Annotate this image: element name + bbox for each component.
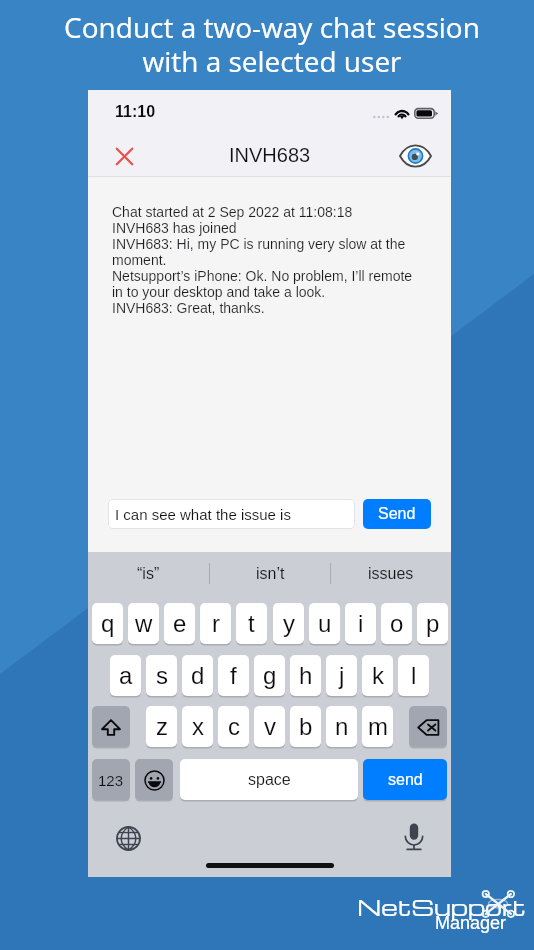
- button[interactable]: Emoji: [135, 759, 173, 801]
- staticText: Netsupport’s iPhone: Ok. No problem, I’l…: [112, 268, 418, 300]
- button[interactable]: r: [200, 603, 231, 645]
- button[interactable]: Send: [363, 499, 431, 529]
- staticText: INVH683: Great, thanks.: [112, 300, 265, 316]
- staticText: t: [248, 610, 255, 637]
- staticText: h: [299, 662, 313, 689]
- staticText: y: [283, 610, 295, 637]
- button[interactable]: l: [398, 655, 429, 697]
- button[interactable]: i: [345, 603, 376, 645]
- button[interactable]: 123: [92, 759, 130, 801]
- button[interactable]: Dictate: [396, 818, 432, 854]
- staticText: INVH683 has joined: [112, 220, 237, 236]
- staticText: NetSupport: [357, 891, 526, 922]
- button[interactable]: s: [146, 655, 177, 697]
- staticText: isn’t: [256, 565, 285, 583]
- staticText: Conduct a two-way chat session with a se…: [64, 8, 480, 80]
- button[interactable]: q: [92, 603, 123, 645]
- staticText: c: [228, 713, 240, 740]
- button[interactable]: e: [164, 603, 195, 645]
- button[interactable]: issues: [331, 552, 451, 595]
- staticText: 123: [98, 772, 124, 789]
- button[interactable]: Shift: [92, 706, 130, 748]
- button[interactable]: c: [218, 706, 249, 748]
- button[interactable]: u: [309, 603, 340, 645]
- button[interactable]: send: [363, 759, 447, 801]
- staticText: b: [299, 713, 313, 740]
- button[interactable]: isn’t: [210, 552, 330, 595]
- staticText: x: [192, 713, 204, 740]
- button[interactable]: space: [180, 759, 358, 801]
- button[interactable]: p: [417, 603, 448, 645]
- staticText: g: [263, 662, 277, 689]
- button[interactable]: j: [326, 655, 357, 697]
- staticText: INVH683: Hi, my PC is running very slow …: [112, 236, 418, 268]
- staticText: z: [156, 713, 168, 740]
- staticText: space: [248, 771, 291, 789]
- staticText: send: [388, 771, 423, 789]
- staticText: Chat started at 2 Sep 2022 at 11:08:18: [112, 204, 353, 220]
- button[interactable]: Switch keyboard: [110, 820, 146, 856]
- staticText: 11:10: [115, 103, 156, 121]
- button[interactable]: Backspace: [409, 706, 447, 748]
- button[interactable]: “is”: [88, 552, 209, 595]
- button[interactable]: a: [110, 655, 141, 697]
- staticText: q: [101, 610, 115, 637]
- staticText: w: [135, 610, 153, 637]
- button[interactable]: Close chat: [105, 137, 143, 175]
- staticText: r: [212, 610, 220, 637]
- button[interactable]: w: [128, 603, 159, 645]
- staticText: a: [119, 662, 133, 689]
- staticText: “is”: [137, 565, 160, 583]
- staticText: e: [173, 610, 187, 637]
- staticText: u: [318, 610, 332, 637]
- staticText: s: [156, 662, 168, 689]
- button[interactable]: z: [146, 706, 177, 748]
- button[interactable]: g: [254, 655, 285, 697]
- button[interactable]: f: [218, 655, 249, 697]
- staticText: Manager: [435, 913, 507, 933]
- staticText: f: [230, 662, 237, 689]
- staticText: l: [411, 662, 417, 689]
- staticText: issues: [368, 565, 414, 583]
- button[interactable]: d: [182, 655, 213, 697]
- button[interactable]: View screen: [390, 136, 440, 176]
- staticText: INVH683: [229, 144, 311, 166]
- button[interactable]: m: [362, 706, 393, 748]
- staticText: n: [335, 713, 349, 740]
- button[interactable]: b: [290, 706, 321, 748]
- staticText: m: [368, 713, 388, 740]
- staticText: v: [264, 713, 276, 740]
- staticText: i: [358, 610, 364, 637]
- button[interactable]: o: [381, 603, 412, 645]
- button[interactable]: v: [254, 706, 285, 748]
- button[interactable]: h: [290, 655, 321, 697]
- button[interactable]: y: [273, 603, 304, 645]
- staticText: p: [426, 610, 440, 637]
- button[interactable]: t: [236, 603, 267, 645]
- staticText: k: [372, 662, 384, 689]
- staticText: Send: [378, 505, 416, 523]
- staticText: d: [191, 662, 205, 689]
- button[interactable]: I can see what the issue is: [108, 499, 355, 529]
- button[interactable]: x: [182, 706, 213, 748]
- staticText: I can see what the issue is: [115, 506, 291, 523]
- staticText: j: [339, 662, 345, 689]
- button[interactable]: n: [326, 706, 357, 748]
- button[interactable]: k: [362, 655, 393, 697]
- staticText: o: [390, 610, 404, 637]
